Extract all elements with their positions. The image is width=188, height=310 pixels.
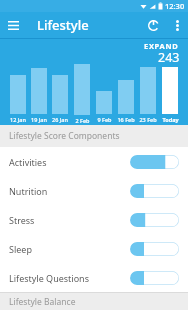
staticText: 12:30	[165, 1, 185, 11]
staticText: 26 Jan	[52, 116, 68, 123]
staticText: 19 Jan	[31, 116, 47, 123]
button[interactable]: Sleep	[0, 234, 188, 263]
button[interactable]: Activities	[0, 147, 188, 176]
staticText: 9 Feb	[97, 116, 112, 123]
staticText: Activities	[9, 156, 47, 168]
staticText: 23 Feb	[139, 116, 157, 123]
staticText: Stress	[9, 214, 35, 226]
staticText: Today	[162, 116, 179, 123]
button[interactable]: Refresh	[140, 12, 166, 38]
button[interactable]: Lifestyle Questions	[0, 263, 188, 292]
button[interactable]: Nutrition	[0, 176, 188, 205]
staticText: Sleep	[9, 243, 32, 255]
button[interactable]: Stress	[0, 205, 188, 234]
button[interactable]: More options	[166, 14, 188, 36]
staticText: 2 Feb	[75, 117, 90, 123]
staticText: 12 Jan	[10, 116, 26, 123]
staticText: Lifestyle Balance	[9, 296, 76, 308]
staticText: 16 Feb	[117, 116, 135, 123]
staticText: 243	[158, 49, 180, 66]
staticText: Lifestyle Score Components	[9, 130, 120, 142]
staticText: Nutrition	[9, 185, 48, 197]
button[interactable]: EXPAND	[144, 41, 179, 51]
staticText: Lifestyle	[37, 16, 89, 34]
button[interactable]: Open navigation menu	[0, 12, 26, 38]
staticText: Lifestyle Questions	[9, 272, 89, 284]
